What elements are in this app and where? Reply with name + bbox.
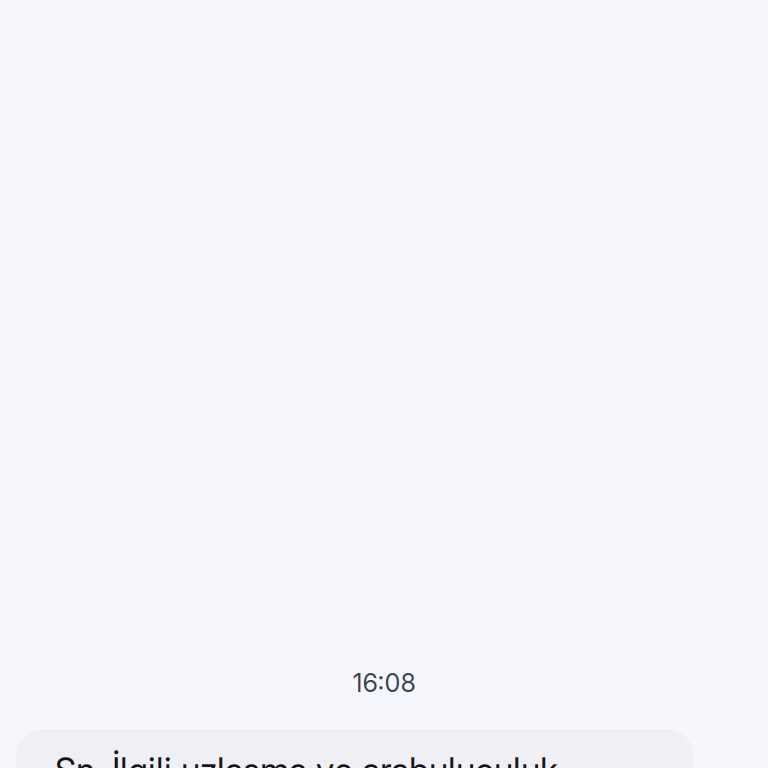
staticText: Sn. İlgili uzlaşma ve arabuluculuk görüş… [55,750,558,768]
button[interactable]: Sn. İlgili uzlaşma ve arabuluculuk görüş… [16,729,694,768]
staticText: 16:08 [352,667,415,698]
